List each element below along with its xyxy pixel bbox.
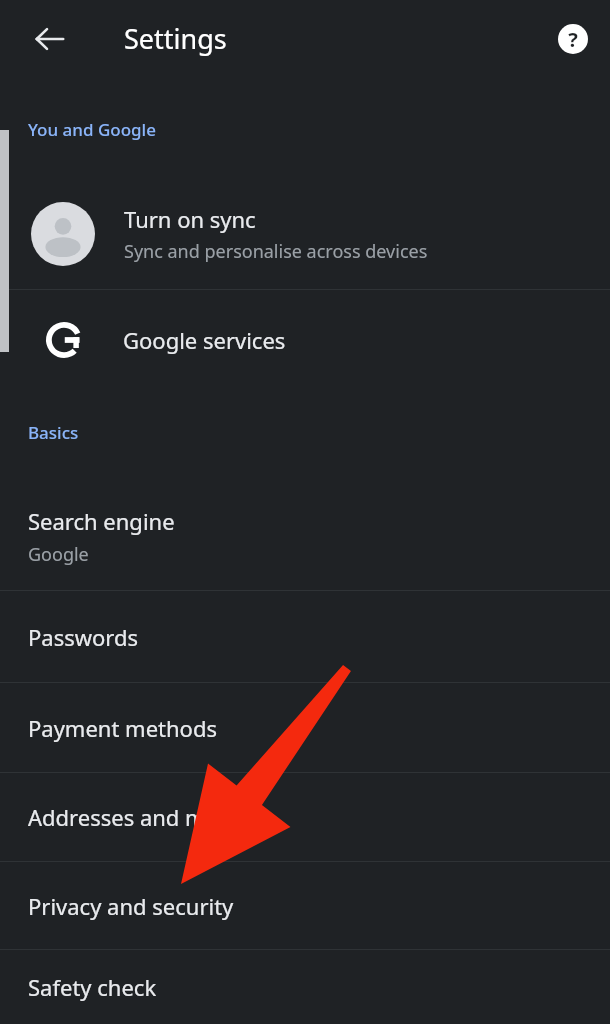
button[interactable]: Turn on sync [0,180,610,288]
button[interactable]: Payment methods [0,683,610,772]
staticText: Privacy and security [28,891,234,921]
staticText: Safety check [28,972,157,1002]
staticText: Payment methods [28,713,218,743]
staticText: Addresses and more [28,802,241,832]
staticText: Google services [123,325,286,355]
button[interactable]: Safety check [0,950,610,1024]
staticText: You and Google [28,118,156,141]
staticText: Turn on sync [124,204,256,234]
staticText: Settings [124,20,227,57]
staticText: ? [568,26,578,53]
button[interactable]: Help [548,14,598,64]
button[interactable]: Privacy and security [0,862,610,949]
button[interactable]: Search engine [28,490,610,590]
button[interactable]: Back [22,11,78,67]
staticText: Search engine [28,506,175,536]
staticText: Basics [28,421,79,444]
button[interactable]: Addresses and more [0,773,610,861]
staticText: Sync and personalise across devices [124,239,428,264]
staticText: Passwords [28,622,139,652]
button[interactable]: Google services [0,292,610,388]
staticText: Google [28,542,89,567]
button[interactable]: Passwords [0,591,610,682]
